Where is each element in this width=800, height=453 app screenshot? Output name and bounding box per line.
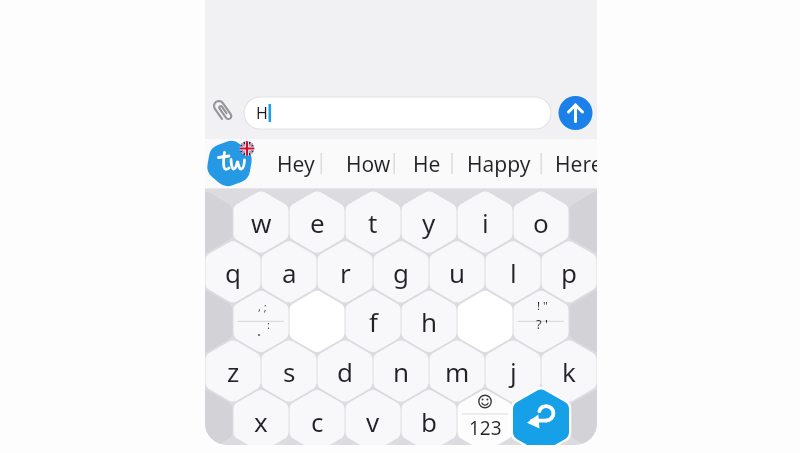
- staticText: g: [393, 255, 409, 290]
- staticText: h: [421, 304, 438, 339]
- button[interactable]: g: [361, 248, 441, 296]
- button[interactable]: b: [389, 397, 469, 445]
- staticText: z: [227, 354, 240, 389]
- staticText: Here: [555, 150, 597, 179]
- staticText: j: [510, 354, 517, 389]
- button[interactable]: y: [389, 198, 469, 246]
- staticText: , ;: [258, 299, 267, 314]
- staticText: Hey: [277, 150, 315, 179]
- button[interactable]: s: [249, 347, 329, 395]
- staticText: ? ': [536, 315, 548, 333]
- staticText: H: [256, 102, 268, 124]
- button[interactable]: h: [389, 297, 469, 345]
- staticText: n: [393, 354, 410, 389]
- staticText: 123: [469, 415, 502, 441]
- staticText: o: [533, 205, 549, 240]
- staticText: d: [337, 354, 353, 389]
- button[interactable]: He: [387, 140, 467, 188]
- staticText: k: [562, 354, 576, 389]
- button[interactable]: [457, 291, 513, 352]
- button[interactable]: c: [277, 397, 357, 445]
- staticText: m: [445, 354, 470, 389]
- button[interactable]: l: [473, 248, 553, 296]
- button[interactable]: v: [333, 397, 413, 445]
- staticText: f: [369, 304, 378, 339]
- button[interactable]: Here: [539, 140, 597, 188]
- staticText: s: [283, 354, 296, 389]
- button[interactable]: p: [529, 248, 597, 296]
- button[interactable]: r: [305, 248, 385, 296]
- staticText: :: [267, 317, 270, 332]
- button[interactable]: f: [333, 297, 413, 345]
- staticText: How: [346, 150, 391, 179]
- staticText: q: [225, 255, 241, 290]
- staticText: l: [510, 255, 517, 290]
- button[interactable]: e: [277, 198, 357, 246]
- button[interactable]: [289, 291, 345, 352]
- button[interactable]: t: [333, 198, 413, 246]
- button[interactable]: q: [205, 248, 273, 296]
- staticText: w: [251, 205, 272, 240]
- staticText: a: [282, 255, 297, 290]
- button[interactable]: [558, 96, 592, 130]
- staticText: c: [311, 404, 324, 439]
- button[interactable]: [513, 390, 569, 445]
- staticText: y: [422, 205, 436, 240]
- button[interactable]: How: [328, 140, 408, 188]
- button[interactable]: w: [221, 198, 301, 246]
- staticText: p: [561, 255, 577, 290]
- staticText: Happy: [467, 150, 531, 179]
- button[interactable]: [207, 141, 252, 186]
- staticText: ! ": [537, 298, 548, 314]
- button[interactable]: z: [205, 347, 273, 395]
- button[interactable]: Hey: [256, 140, 336, 188]
- staticText: i: [482, 205, 489, 240]
- button[interactable]: [244, 97, 551, 129]
- staticText: He: [413, 150, 441, 179]
- staticText: .: [257, 320, 262, 340]
- button[interactable]: a: [249, 248, 329, 296]
- staticText: r: [340, 255, 351, 290]
- staticText: x: [254, 404, 268, 439]
- staticText: u: [449, 255, 466, 290]
- staticText: b: [421, 404, 437, 439]
- staticText: t: [368, 205, 378, 240]
- button[interactable]: u: [417, 248, 497, 296]
- button[interactable]: n: [361, 347, 441, 395]
- button[interactable]: k: [529, 347, 597, 395]
- button[interactable]: j: [473, 347, 553, 395]
- button[interactable]: o: [501, 198, 581, 246]
- button[interactable]: d: [305, 347, 385, 395]
- button[interactable]: m: [417, 347, 497, 395]
- staticText: e: [310, 205, 325, 240]
- button[interactable]: x: [221, 397, 301, 445]
- button[interactable]: i: [445, 198, 525, 246]
- staticText: v: [366, 404, 380, 439]
- button[interactable]: Happy: [459, 140, 539, 188]
- button[interactable]: 123: [445, 404, 525, 445]
